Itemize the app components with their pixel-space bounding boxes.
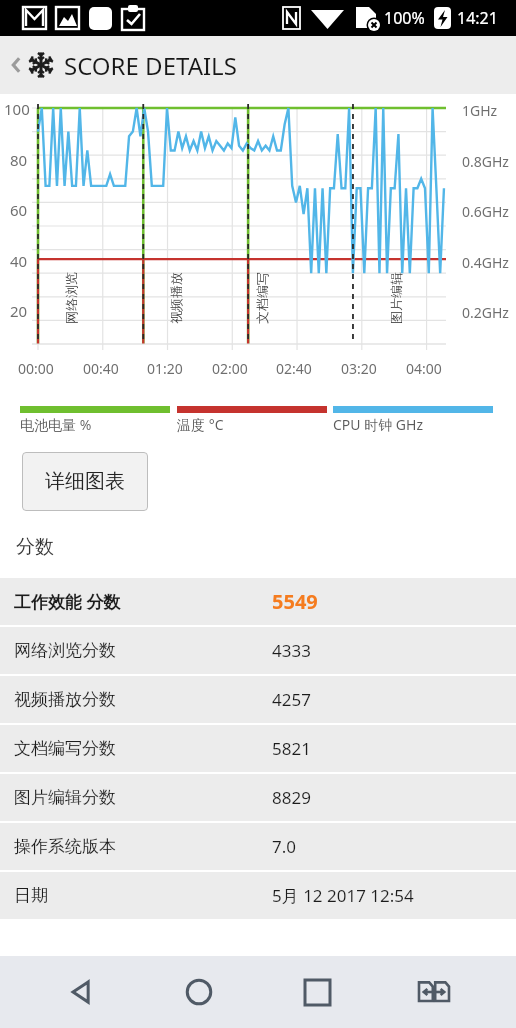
button[interactable]: 视频播放分数 xyxy=(0,676,516,723)
staticText: 02:40 xyxy=(276,359,312,378)
staticText: CPU 时钟 GHz xyxy=(333,415,423,434)
staticText: 40 xyxy=(10,251,28,271)
staticText: 00:40 xyxy=(83,359,119,378)
staticText: 8829 xyxy=(272,786,311,809)
staticText: 4257 xyxy=(272,688,311,711)
staticText: 0.4GHz xyxy=(462,253,509,272)
staticText: 图片编辑 xyxy=(388,272,404,324)
other: Back xyxy=(8,51,24,79)
staticText: 7.0 xyxy=(272,835,297,858)
button[interactable]: 文档编写分数 xyxy=(0,725,516,772)
staticText: 温度 °C xyxy=(177,415,224,434)
button[interactable]: Back xyxy=(46,956,118,1028)
button[interactable]: 操作系统版本 xyxy=(0,823,516,870)
staticText: 60 xyxy=(10,200,28,220)
staticText: 图片编辑分数 xyxy=(14,787,116,808)
button[interactable]: Back xyxy=(0,36,516,94)
staticText: 网络浏览 xyxy=(63,272,79,324)
staticText: 02:00 xyxy=(212,359,248,378)
staticText: 5月 12 2017 12:54 xyxy=(272,884,414,907)
staticText: 操作系统版本 xyxy=(14,836,116,857)
staticText: 日期 xyxy=(14,885,48,906)
staticText: 5821 xyxy=(272,737,311,760)
staticText: 03:20 xyxy=(341,359,377,378)
staticText: 0.6GHz xyxy=(462,202,509,221)
staticText: 100 xyxy=(4,99,30,119)
staticText: 分数 xyxy=(16,535,54,559)
button[interactable]: 网络浏览分数 xyxy=(0,627,516,674)
staticText: 工作效能 分数 xyxy=(14,590,121,613)
staticText: 0.8GHz xyxy=(462,152,509,171)
button[interactable]: Switch apps xyxy=(398,956,470,1028)
staticText: 详细图表 xyxy=(45,469,125,494)
staticText: 4333 xyxy=(272,639,311,662)
staticText: 01:20 xyxy=(147,359,183,378)
staticText: 00:00 xyxy=(18,359,54,378)
staticText: 电池电量 % xyxy=(20,415,92,434)
staticText: 80 xyxy=(10,150,28,170)
staticText: 1GHz xyxy=(462,101,498,120)
staticText: 20 xyxy=(10,301,28,321)
button[interactable]: 图片编辑分数 xyxy=(0,774,516,821)
button[interactable]: Recent apps xyxy=(281,956,353,1028)
button[interactable]: 详细图表 xyxy=(22,452,148,511)
staticText: 网络浏览分数 xyxy=(14,640,116,661)
staticText: 100% xyxy=(384,7,425,29)
button[interactable]: 工作效能 分数 xyxy=(0,578,516,625)
staticText: 14:21 xyxy=(457,7,498,29)
button[interactable]: 日期 xyxy=(0,872,516,919)
staticText: 视频播放分数 xyxy=(14,689,116,710)
button[interactable]: Home xyxy=(163,956,235,1028)
staticText: SCORE DETAILS xyxy=(64,49,237,82)
staticText: 0.2GHz xyxy=(462,303,509,322)
staticText: 文档编写分数 xyxy=(14,738,116,759)
staticText: 04:00 xyxy=(406,359,442,378)
staticText: 视频播放 xyxy=(168,272,184,324)
staticText: 5549 xyxy=(272,588,318,615)
staticText: 文档编写 xyxy=(254,272,270,324)
